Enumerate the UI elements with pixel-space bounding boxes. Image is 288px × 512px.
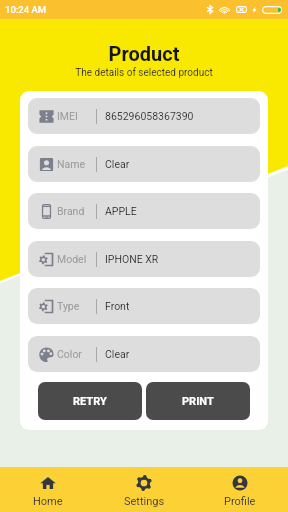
- button[interactable]: Name: [28, 146, 260, 182]
- button[interactable]: Settings: [96, 467, 192, 512]
- button[interactable]: Type: [28, 288, 260, 324]
- staticText: PRINT: [182, 395, 214, 408]
- staticText: Clear: [105, 158, 130, 170]
- staticText: Front: [105, 300, 130, 312]
- staticText: 10:24 AM: [5, 4, 47, 15]
- staticText: IPHONE XR: [105, 253, 159, 265]
- staticText: The details of selected product: [0, 67, 288, 79]
- staticText: Model: [57, 253, 87, 265]
- button[interactable]: Color: [28, 336, 260, 372]
- staticText: IMEI: [57, 110, 78, 122]
- staticText: Clear: [105, 348, 130, 360]
- button[interactable]: IMEI: [28, 98, 260, 134]
- button[interactable]: Brand: [28, 193, 260, 229]
- button[interactable]: Home: [0, 467, 96, 512]
- staticText: APPLE: [105, 205, 137, 217]
- staticText: Type: [57, 300, 80, 312]
- button[interactable]: Model: [28, 241, 260, 277]
- staticText: Settings: [124, 495, 165, 508]
- button[interactable]: RETRY: [38, 382, 142, 420]
- staticText: Color: [57, 348, 82, 360]
- staticText: RETRY: [73, 395, 107, 408]
- staticText: Brand: [57, 205, 85, 217]
- staticText: Name: [57, 158, 85, 170]
- button[interactable]: PRINT: [146, 382, 250, 420]
- staticText: 865296058367390: [105, 110, 194, 122]
- staticText: Home: [33, 495, 63, 508]
- button[interactable]: Profile: [192, 467, 288, 512]
- staticText: Profile: [224, 495, 256, 508]
- staticText: Product: [0, 42, 288, 65]
